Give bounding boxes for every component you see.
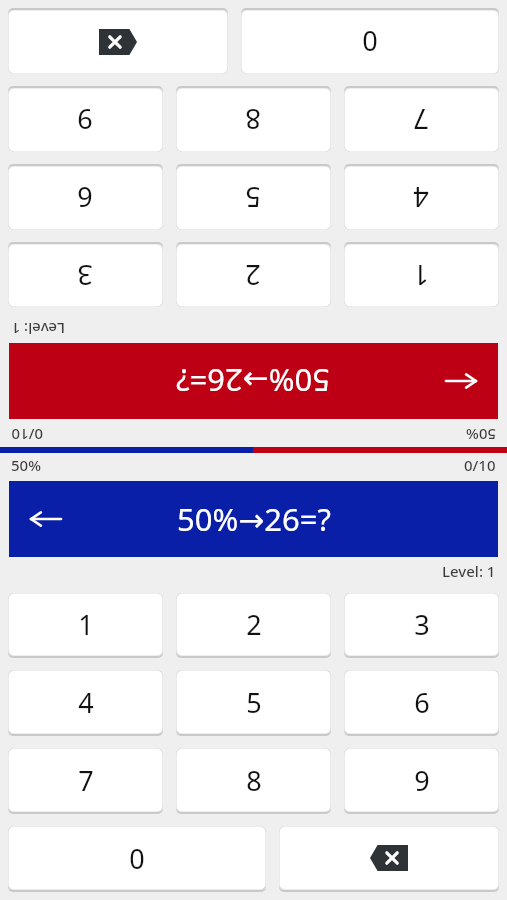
button[interactable]: 7	[344, 86, 499, 152]
button[interactable]: 4	[344, 164, 499, 230]
button[interactable]: 7	[8, 748, 163, 814]
button[interactable]: 6	[8, 164, 163, 230]
button[interactable]: 4	[8, 670, 163, 736]
staticText: 2	[246, 606, 262, 643]
button[interactable]: 50%→26=?	[9, 481, 498, 557]
button[interactable]: 3	[344, 593, 499, 658]
button[interactable]: 0	[8, 826, 266, 892]
staticText: 5	[245, 179, 261, 216]
staticText: Level: 1	[11, 319, 65, 339]
staticText: 4	[78, 684, 94, 721]
staticText: 9	[77, 101, 93, 138]
button[interactable]: Backspace	[279, 826, 499, 892]
staticText: 0	[129, 840, 145, 877]
button[interactable]: 0	[241, 8, 499, 74]
staticText: 2	[245, 257, 261, 294]
button[interactable]: 1	[8, 593, 163, 658]
staticText: 50%→26=?	[176, 360, 330, 402]
button[interactable]: Backspace	[8, 8, 228, 74]
button[interactable]: 9	[344, 748, 499, 814]
staticText: 8	[246, 762, 262, 799]
button[interactable]: 1	[344, 242, 499, 307]
staticText: 6	[77, 179, 93, 216]
staticText: 3	[77, 257, 93, 294]
staticText: 9	[414, 762, 430, 799]
staticText: 0/10	[11, 425, 43, 445]
button[interactable]: 8	[176, 748, 331, 814]
staticText: 1	[78, 606, 94, 643]
button[interactable]: 6	[344, 670, 499, 736]
button[interactable]: 5	[176, 164, 331, 230]
staticText: 7	[78, 762, 94, 799]
button[interactable]: 3	[8, 242, 163, 307]
staticText: 1	[413, 257, 429, 294]
staticText: 3	[414, 606, 430, 643]
button[interactable]: 50%→26=?	[9, 343, 498, 419]
button[interactable]: 5	[176, 670, 331, 736]
staticText: 5	[246, 684, 262, 721]
staticText: Level: 1	[442, 561, 496, 581]
staticText: 0/10	[464, 455, 496, 475]
staticText: 50%	[11, 455, 41, 475]
button[interactable]: 2	[176, 593, 331, 658]
button[interactable]: 9	[8, 86, 163, 152]
button[interactable]: 8	[176, 86, 331, 152]
staticText: 4	[413, 179, 429, 216]
staticText: 50%→26=?	[177, 498, 331, 540]
staticText: 7	[413, 101, 429, 138]
staticText: 6	[414, 684, 430, 721]
staticText: 0	[362, 23, 378, 60]
staticText: 50%	[466, 425, 496, 445]
button[interactable]: 2	[176, 242, 331, 307]
staticText: 8	[245, 101, 261, 138]
